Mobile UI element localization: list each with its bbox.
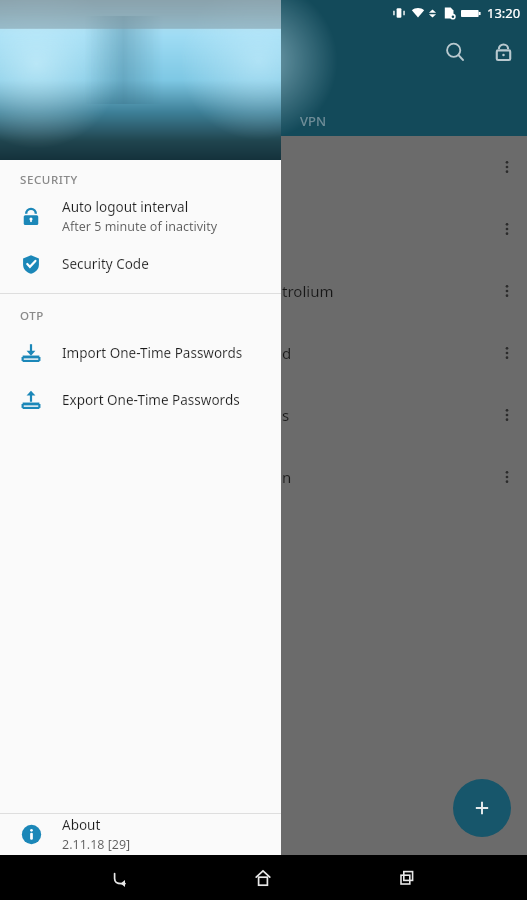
- button[interactable]: Security Code: [0, 240, 281, 287]
- staticText: Import One-Time Passwords: [62, 344, 243, 362]
- staticText: n: [282, 467, 292, 487]
- button[interactable]: Add: [453, 779, 511, 837]
- button[interactable]: s: [0, 384, 527, 446]
- staticText: Security Code: [62, 255, 149, 273]
- button[interactable]: Lock: [479, 28, 527, 76]
- staticText: 13:20: [487, 4, 521, 22]
- staticText: d: [282, 343, 292, 363]
- button[interactable]: Export One-Time Passwords: [0, 376, 281, 423]
- staticText: 2.11.18 [29]: [62, 836, 131, 853]
- other: More options: [487, 333, 527, 373]
- staticText: trolium: [282, 281, 334, 301]
- other: More options: [487, 147, 527, 187]
- button[interactable]: Auto logout interval: [0, 193, 281, 240]
- button[interactable]: VPN: [300, 112, 327, 130]
- button[interactable]: About: [0, 814, 281, 855]
- button[interactable]: Back: [95, 855, 143, 900]
- staticText: After 5 minute of inactivity: [62, 218, 218, 235]
- button[interactable]: n: [0, 446, 527, 508]
- other: More options: [487, 395, 527, 435]
- button[interactable]: More options: [0, 136, 527, 198]
- staticText: SECURITY: [20, 172, 78, 188]
- staticText: s: [282, 405, 290, 425]
- staticText: About: [62, 816, 101, 834]
- other: More options: [487, 209, 527, 249]
- button[interactable]: Search: [431, 28, 479, 76]
- button[interactable]: Import One-Time Passwords: [0, 329, 281, 376]
- button[interactable]: Home: [239, 855, 287, 900]
- button[interactable]: Recents: [383, 855, 431, 900]
- other: More options: [487, 271, 527, 311]
- button[interactable]: More options: [0, 198, 527, 260]
- staticText: Auto logout interval: [62, 198, 189, 216]
- other: More options: [487, 457, 527, 497]
- button[interactable]: trolium: [0, 260, 527, 322]
- staticText: Export One-Time Passwords: [62, 391, 240, 409]
- staticText: VPN: [300, 112, 327, 130]
- button[interactable]: d: [0, 322, 527, 384]
- staticText: OTP: [20, 308, 44, 324]
